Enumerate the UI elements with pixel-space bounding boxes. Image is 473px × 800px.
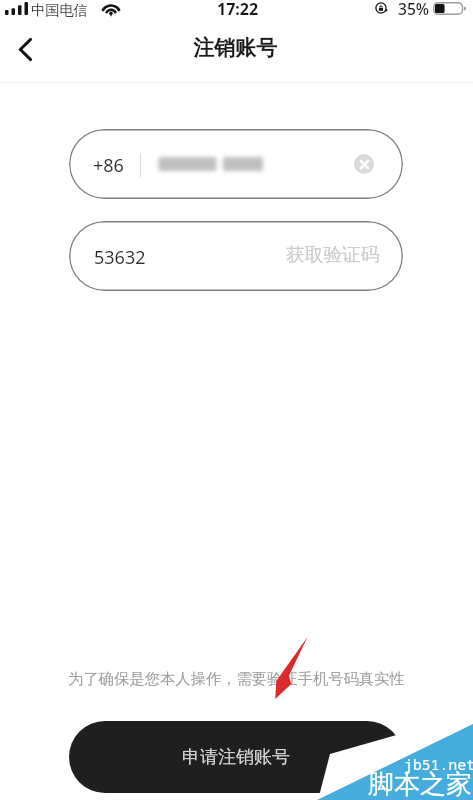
button[interactable]: 53632	[69, 221, 403, 291]
button[interactable]: 获取验证码	[281, 238, 384, 272]
staticText: 申请注销账号	[182, 746, 290, 769]
staticText: 中国电信	[31, 1, 88, 19]
staticText: jb51.net	[404, 754, 473, 774]
button[interactable]: +86	[69, 129, 403, 199]
button[interactable]: Clear text	[354, 154, 374, 174]
staticText: +86	[93, 153, 124, 178]
staticText: 17:22	[217, 0, 259, 20]
button[interactable]: 申请注销账号	[69, 721, 403, 793]
staticText: 脚本之家	[368, 768, 472, 800]
staticText: 为了确保是您本人操作，需要验证手机号码真实性	[0, 669, 473, 688]
staticText: 53632	[94, 245, 146, 270]
staticText: 注销账号	[193, 35, 277, 61]
button[interactable]: Back	[2, 23, 48, 76]
staticText: 获取验证码	[286, 243, 380, 267]
staticText: 35%	[398, 0, 430, 19]
